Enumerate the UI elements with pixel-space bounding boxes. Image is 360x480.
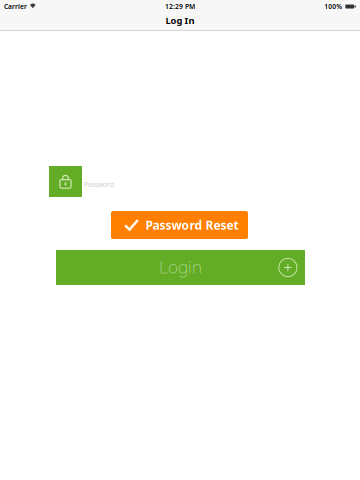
button[interactable]: Password	[49, 166, 82, 197]
staticText: Login	[159, 255, 202, 278]
staticText: Log In	[165, 14, 194, 27]
button[interactable]: Login	[56, 250, 305, 285]
button[interactable]: Password Reset	[111, 211, 248, 239]
staticText: 12:29 PM	[165, 2, 195, 11]
staticText: Carrier	[4, 2, 27, 11]
staticText: Password	[84, 180, 114, 189]
staticText: 100%	[324, 2, 342, 11]
button[interactable]: Password	[82, 166, 304, 197]
staticText: Password Reset	[145, 217, 238, 233]
